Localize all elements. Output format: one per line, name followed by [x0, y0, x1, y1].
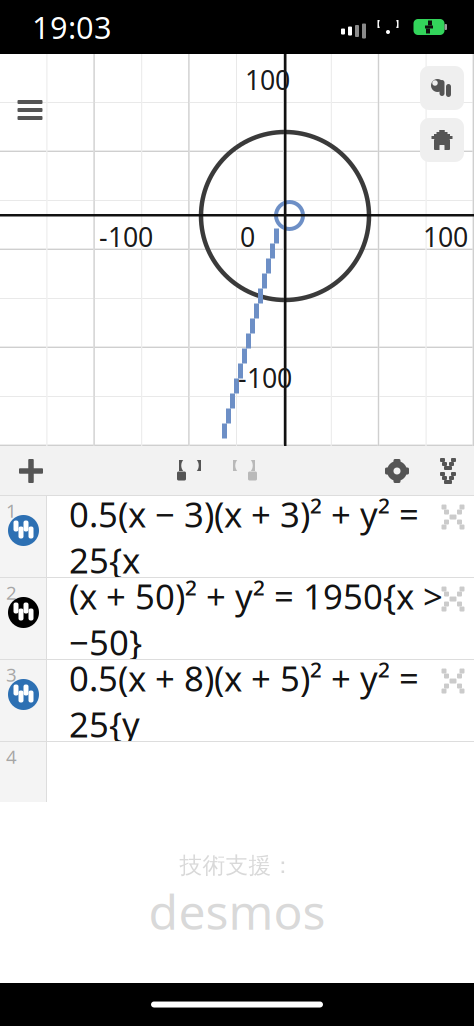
staticText: 4: [6, 744, 17, 769]
staticText: 19:03: [32, 7, 112, 47]
staticText: 0.5(x + 8)(x + 5)² + y² = 25{y: [69, 655, 419, 747]
staticText: 0.5(x − 3)(x + 3)² + y² = 25{x: [69, 491, 419, 583]
staticText: 100: [423, 219, 468, 254]
staticText: 0: [240, 219, 255, 254]
staticText: 1: [6, 498, 17, 523]
button[interactable]: Add expression: [0, 446, 62, 496]
button[interactable]: Menu: [0, 80, 58, 136]
button[interactable]: 3: [0, 660, 474, 742]
button[interactable]: Reset view: [420, 118, 464, 162]
staticText: 3: [6, 662, 17, 687]
button[interactable]: Hide panel: [422, 446, 474, 496]
button[interactable]: 2: [0, 578, 474, 660]
staticText: 技術支援：: [179, 851, 294, 879]
button[interactable]: Settings: [372, 446, 422, 496]
button[interactable]: Graph tools: [420, 66, 464, 110]
button[interactable]: Undo: [163, 446, 217, 496]
staticText: -100: [99, 219, 153, 254]
button[interactable]: 1: [0, 496, 474, 578]
button[interactable]: Redo: [217, 446, 271, 496]
button[interactable]: 4: [0, 742, 474, 802]
staticText: 2: [6, 580, 17, 605]
staticText: (x + 50)² + y² = 1950{x > −50}: [69, 573, 443, 665]
staticText: -100: [238, 360, 292, 395]
staticText: 100: [245, 62, 290, 97]
staticText: desmos: [148, 879, 325, 943]
